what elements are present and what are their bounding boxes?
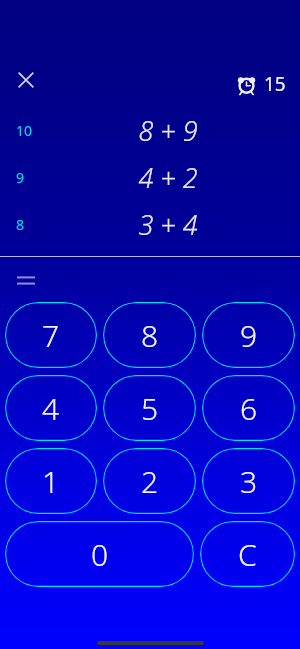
button[interactable]: 3 — [202, 448, 295, 514]
staticText: 4 + 2 — [138, 159, 198, 196]
button[interactable]: 0 — [5, 521, 194, 587]
button[interactable]: 9 — [202, 302, 295, 368]
button[interactable]: 7 — [5, 302, 97, 368]
staticText: 3 — [240, 461, 258, 502]
staticText: 5 — [141, 388, 159, 429]
staticText: 9 — [240, 315, 258, 356]
button[interactable]: 5 — [103, 375, 196, 441]
button[interactable]: Timer 15 — [236, 71, 286, 97]
button[interactable]: 1 — [5, 448, 97, 514]
staticText: 1 — [42, 461, 60, 502]
staticText: 6 — [240, 388, 258, 429]
staticText: C — [238, 534, 257, 575]
staticText: 8 — [141, 315, 159, 356]
staticText: 15 — [264, 71, 286, 97]
button[interactable]: 6 — [202, 375, 295, 441]
staticText: 4 — [42, 388, 60, 429]
staticText: 0 — [91, 534, 109, 575]
staticText: 10 — [16, 121, 33, 140]
button[interactable]: 8 — [103, 302, 196, 368]
button[interactable]: 2 — [103, 448, 196, 514]
button[interactable]: 8 — [0, 201, 300, 248]
staticText: 2 — [141, 461, 159, 502]
staticText: 9 — [16, 168, 25, 187]
button[interactable]: 4 — [5, 375, 97, 441]
button[interactable]: Equals — [12, 269, 40, 291]
button[interactable]: Close — [10, 64, 42, 96]
staticText: 3 + 4 — [138, 206, 198, 243]
staticText: 8 — [16, 215, 25, 234]
button[interactable]: C — [200, 521, 295, 587]
staticText: 7 — [42, 315, 60, 356]
button[interactable]: 10 — [0, 107, 300, 154]
button[interactable]: 9 — [0, 154, 300, 201]
staticText: 8 + 9 — [138, 112, 198, 149]
